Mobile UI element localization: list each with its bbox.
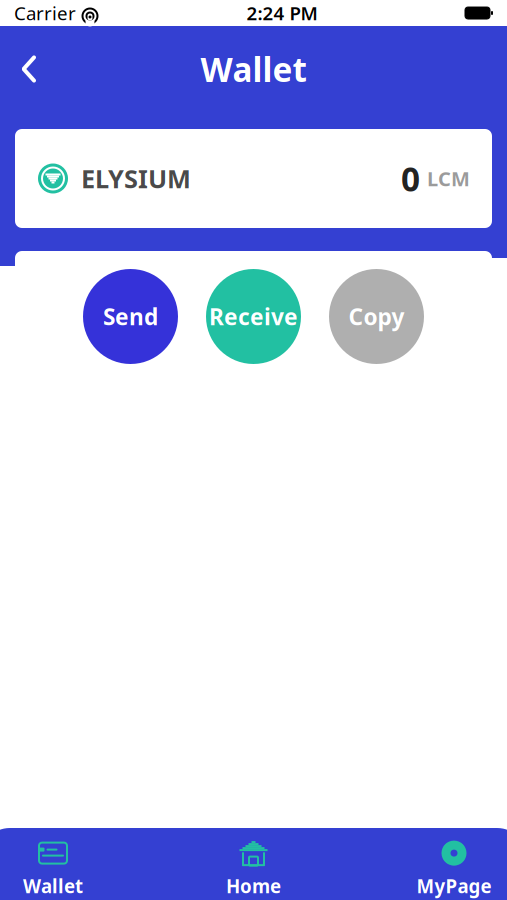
staticText: Receive xyxy=(209,301,298,331)
staticText: Carrier xyxy=(14,1,76,25)
staticText: ELYSIUM xyxy=(81,162,191,195)
button[interactable]: Home xyxy=(188,838,318,900)
button[interactable]: Back xyxy=(6,46,52,92)
button[interactable]: Wallet xyxy=(0,838,118,900)
staticText: Home xyxy=(226,874,281,898)
staticText: Send xyxy=(103,301,158,331)
staticText: Wallet xyxy=(23,874,83,898)
staticText: 0 xyxy=(401,156,420,201)
staticText: 2:24 PM xyxy=(246,1,317,25)
button[interactable]: Receive xyxy=(206,269,301,364)
button[interactable]: Send xyxy=(83,269,178,364)
button[interactable]: MyPage xyxy=(389,838,507,900)
staticText: Copy xyxy=(348,301,404,331)
staticText: MyPage xyxy=(416,874,491,898)
staticText: LCM xyxy=(427,165,470,192)
button[interactable]: Copy xyxy=(329,269,424,364)
staticText: Wallet xyxy=(200,47,306,91)
